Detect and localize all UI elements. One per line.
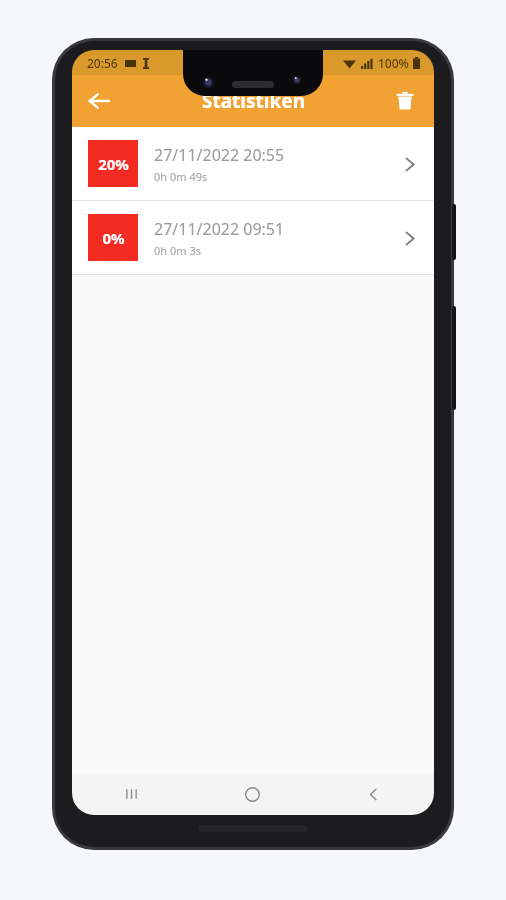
staticText: Statistiken <box>202 88 305 114</box>
button[interactable]: Back <box>313 773 434 815</box>
staticText: 0h 0m 49s <box>154 169 208 184</box>
button[interactable]: Delete <box>382 78 428 124</box>
staticText: 0% <box>102 228 125 248</box>
staticText: 100% <box>378 55 409 71</box>
staticText: 27/11/2022 09:51 <box>154 218 285 240</box>
button[interactable]: 20% <box>72 127 434 200</box>
staticText: 20% <box>98 154 129 174</box>
button[interactable]: Home <box>192 773 313 815</box>
staticText: 27/11/2022 20:55 <box>154 144 285 166</box>
staticText: 0h 0m 3s <box>154 243 201 258</box>
button[interactable]: Back <box>76 78 122 124</box>
button[interactable]: 0% <box>72 201 434 274</box>
staticText: 20:56 <box>87 55 118 71</box>
button[interactable]: Recents <box>72 773 192 815</box>
